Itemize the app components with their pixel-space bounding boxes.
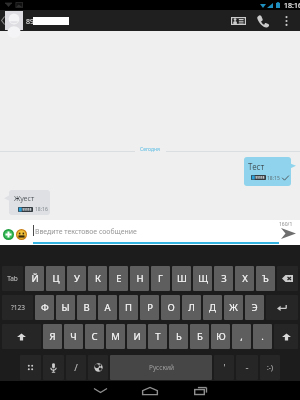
staticText: В — [83, 301, 90, 314]
button[interactable]: Insert emoji — [16, 229, 27, 240]
button[interactable]: Й — [25, 266, 44, 291]
button[interactable]: Send message — [276, 220, 300, 245]
staticText: , — [240, 330, 243, 343]
staticText: 89 — [26, 17, 35, 27]
button[interactable]: К — [88, 266, 107, 291]
button[interactable]: , — [232, 324, 251, 349]
staticText: - — [245, 361, 249, 374]
staticText: С — [91, 330, 98, 343]
staticText: М — [111, 330, 120, 343]
button[interactable]: Ч — [64, 324, 83, 349]
button[interactable] — [2, 324, 41, 349]
button[interactable]: Home — [125, 381, 175, 400]
button[interactable]: Contact details — [224, 10, 253, 31]
button[interactable]: Б — [190, 324, 209, 349]
button[interactable]: Тест — [244, 157, 291, 186]
button[interactable]: Э — [245, 295, 264, 320]
button[interactable]: И — [127, 324, 146, 349]
button[interactable]: Л — [182, 295, 201, 320]
button[interactable]: П — [119, 295, 138, 320]
button[interactable]: Т — [148, 324, 167, 349]
staticText: Сегодня — [140, 146, 161, 153]
staticText: Ш — [177, 272, 187, 285]
staticText: 18:16 — [35, 206, 48, 213]
button[interactable]: Hide keyboard — [75, 381, 125, 400]
button[interactable]: Ь — [169, 324, 188, 349]
staticText: Введите текстовое сообщение — [35, 227, 137, 236]
button[interactable]: Navigate up — [0, 10, 24, 31]
button[interactable]: Г — [151, 266, 170, 291]
button[interactable]: Ы — [56, 295, 75, 320]
button[interactable]: Ц — [46, 266, 65, 291]
button[interactable]: Н — [130, 266, 149, 291]
button[interactable]: Х — [235, 266, 254, 291]
button[interactable]: More options — [278, 10, 295, 31]
staticText: Й — [31, 272, 39, 285]
staticText: А — [104, 301, 111, 314]
staticText: Ц — [52, 272, 60, 285]
staticText: 18:16 — [284, 1, 300, 11]
staticText: О — [167, 301, 175, 314]
staticText: Tab — [7, 274, 18, 283]
button[interactable]: Жуест — [9, 190, 50, 215]
staticText: Е — [116, 272, 122, 285]
staticText: ?123 — [11, 303, 25, 312]
button[interactable] — [266, 295, 298, 320]
staticText: Жуест — [14, 194, 35, 204]
button[interactable]: Tab — [2, 266, 23, 291]
staticText: Щ — [198, 272, 208, 285]
staticText: ' — [223, 361, 226, 374]
staticText: Х — [242, 272, 248, 285]
staticText: Э — [251, 301, 258, 314]
button[interactable]: Е — [109, 266, 128, 291]
staticText: Ь — [176, 330, 182, 343]
button[interactable]: / — [66, 355, 86, 380]
button[interactable]: . — [253, 324, 272, 349]
button[interactable]: Щ — [193, 266, 212, 291]
button[interactable]: В — [77, 295, 96, 320]
button[interactable]: Ъ — [256, 266, 275, 291]
button[interactable]: О — [161, 295, 180, 320]
staticText: Р — [147, 301, 153, 314]
staticText: Л — [188, 301, 195, 314]
staticText: Ъ — [262, 272, 269, 285]
button[interactable]: С — [85, 324, 104, 349]
button[interactable] — [277, 266, 298, 291]
button[interactable]: Ф — [35, 295, 54, 320]
button[interactable]: Русский — [110, 355, 212, 380]
button[interactable]: Recent apps — [175, 381, 225, 400]
staticText: Т — [155, 330, 161, 343]
button[interactable]: ' — [214, 355, 234, 380]
button[interactable] — [43, 355, 64, 380]
button[interactable]: А — [98, 295, 117, 320]
staticText: / — [74, 361, 78, 374]
staticText: У — [74, 272, 80, 285]
button[interactable]: Call — [248, 10, 277, 31]
button[interactable]: Д — [203, 295, 222, 320]
staticText: 18:15 — [267, 175, 280, 182]
staticText: . — [261, 330, 264, 343]
button[interactable]: Ж — [224, 295, 243, 320]
button[interactable] — [20, 355, 41, 380]
staticText: З — [221, 272, 227, 285]
button[interactable]: З — [214, 266, 233, 291]
staticText: :-) — [267, 363, 273, 372]
staticText: Русский — [149, 363, 174, 372]
button[interactable]: ?123 — [2, 295, 33, 320]
button[interactable]: Я — [43, 324, 62, 349]
button[interactable]: Add attachment — [3, 229, 14, 240]
button[interactable]: :-) — [260, 355, 280, 380]
button[interactable]: У — [67, 266, 86, 291]
staticText: К — [95, 272, 101, 285]
button[interactable]: - — [236, 355, 258, 380]
button[interactable]: Ю — [211, 324, 230, 349]
button[interactable]: Ш — [172, 266, 191, 291]
button[interactable]: Р — [140, 295, 159, 320]
button[interactable] — [274, 324, 298, 349]
button[interactable]: М — [106, 324, 125, 349]
staticText: Ф — [41, 301, 49, 314]
staticText: Ч — [70, 330, 77, 343]
staticText: Б — [197, 330, 203, 343]
button[interactable] — [88, 355, 108, 380]
staticText: Ы — [61, 301, 70, 314]
